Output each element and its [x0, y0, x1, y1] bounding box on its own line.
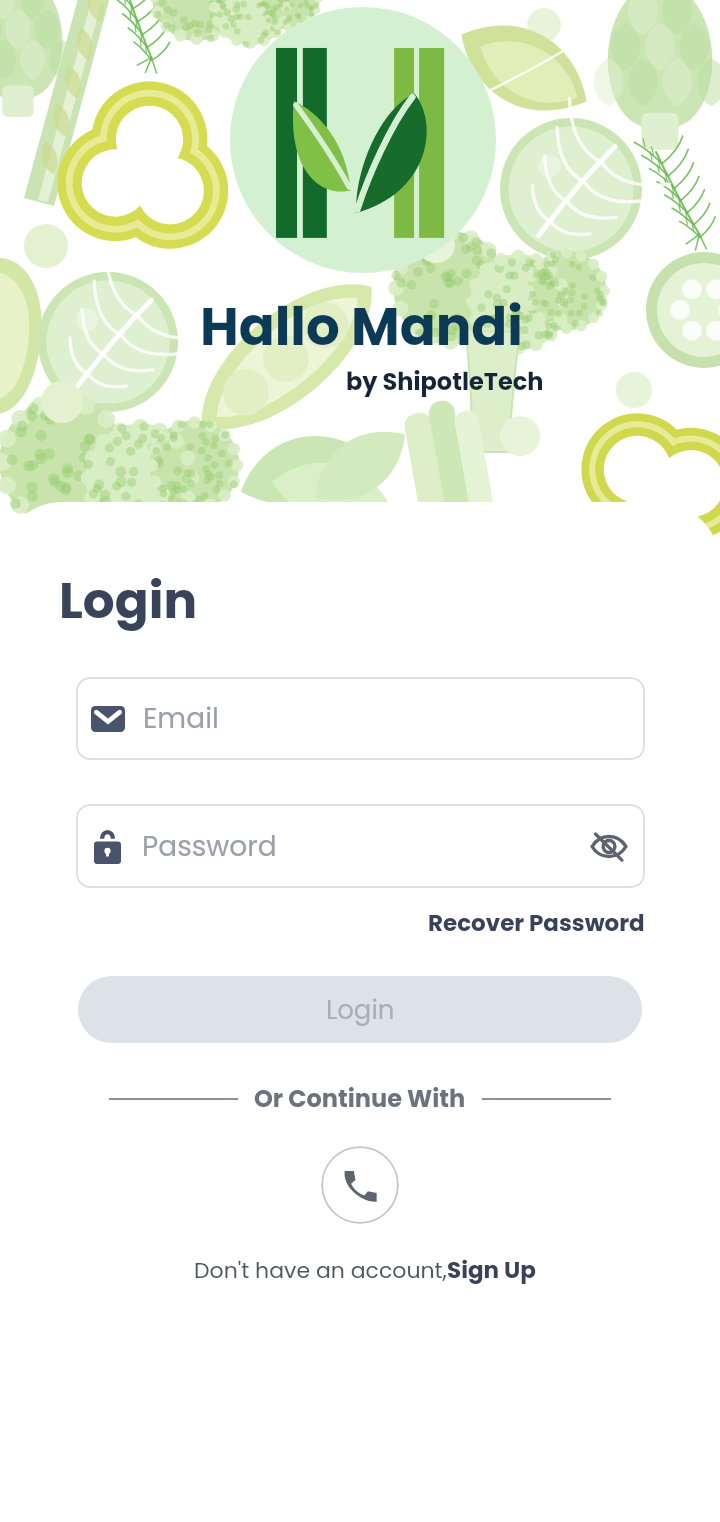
staticText: Password: [142, 827, 277, 866]
staticText: Don't have an account,: [194, 1255, 447, 1286]
staticText: Login: [326, 992, 395, 1028]
button[interactable]: Continue with phone: [321, 1146, 399, 1224]
button[interactable]: Sign Up: [447, 1254, 536, 1286]
staticText: Login: [59, 566, 198, 636]
staticText: Or Continue With: [254, 1082, 466, 1116]
staticText: by ShipotleTech: [346, 365, 544, 399]
staticText: Hallo Mandi: [200, 289, 523, 363]
button[interactable]: Recover Password: [428, 907, 645, 939]
staticText: Email: [143, 699, 219, 738]
button[interactable]: Password: [76, 804, 645, 888]
button[interactable]: Email: [76, 677, 645, 760]
button[interactable]: Show password: [585, 822, 633, 870]
button[interactable]: Login: [78, 976, 642, 1043]
